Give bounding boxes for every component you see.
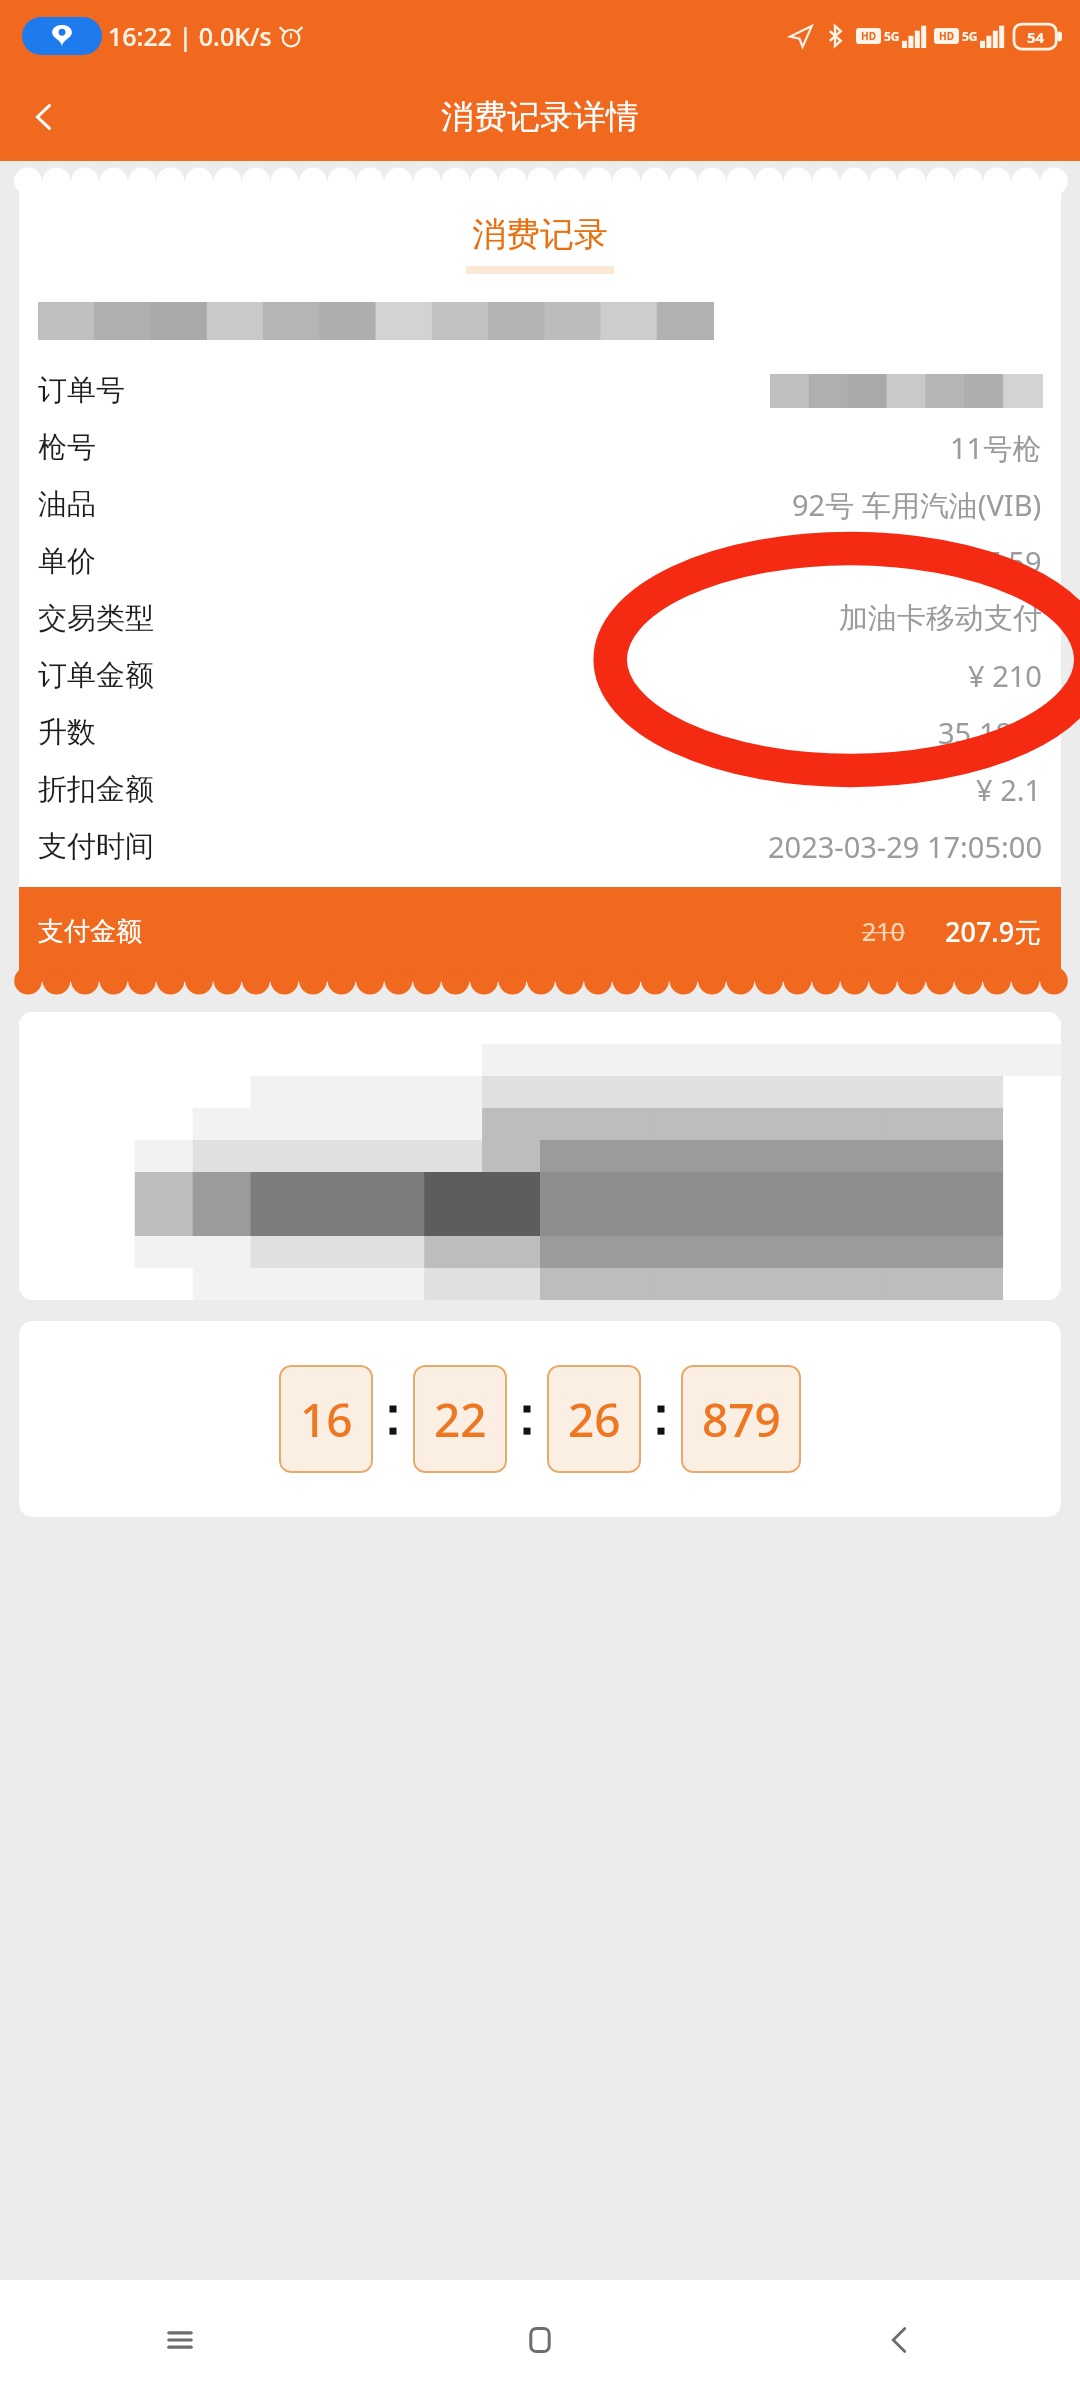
staticText: 22: [434, 1388, 487, 1451]
button[interactable]: 单价: [38, 533, 1042, 590]
button[interactable]: 订单金额: [38, 647, 1042, 704]
button[interactable]: 支付时间: [38, 818, 1042, 875]
staticText: 订单金额: [38, 657, 154, 694]
button[interactable]: 升数: [38, 704, 1042, 761]
staticText: 92号 车用汽油(VIB): [792, 485, 1042, 525]
button[interactable]: 枪号: [38, 419, 1042, 476]
staticText: 枪号: [38, 429, 96, 466]
staticText: ¥ 2.1: [976, 770, 1042, 809]
button[interactable]: 订单号: [38, 362, 1042, 419]
button[interactable]: 16: [279, 1365, 373, 1473]
staticText: 消费记录详情: [441, 96, 639, 138]
staticText: 16:22 | 0.0K/s: [108, 19, 272, 53]
staticText: ¥ 210: [968, 656, 1042, 695]
staticText: 11号枪: [950, 428, 1042, 468]
button[interactable]: Back: [16, 89, 72, 145]
staticText: 5G: [962, 28, 978, 44]
button[interactable]: Photo: [19, 1012, 1061, 1300]
staticText: 单价: [38, 543, 96, 580]
staticText: 油品: [38, 486, 96, 523]
button[interactable]: 折扣金额: [38, 761, 1042, 818]
staticText: 7.59: [984, 542, 1042, 581]
staticText: 54: [1027, 27, 1045, 47]
staticText: 支付时间: [38, 828, 154, 865]
staticText: 消费记录: [472, 213, 608, 256]
staticText: 207.9元: [945, 913, 1042, 950]
button[interactable]: 879: [681, 1365, 801, 1473]
staticText: 2023-03-29 17:05:00: [768, 827, 1042, 866]
staticText: 支付金额: [38, 915, 142, 948]
staticText: 210: [862, 914, 905, 948]
staticText: 35.18升: [938, 713, 1042, 753]
staticText: 折扣金额: [38, 771, 154, 808]
button[interactable]: Recents: [0, 2280, 360, 2400]
staticText: HD: [861, 29, 876, 43]
staticText: 26: [568, 1388, 621, 1451]
button[interactable]: Back: [720, 2280, 1080, 2400]
button[interactable]: Location: [22, 17, 102, 55]
button[interactable]: 26: [547, 1365, 641, 1473]
button[interactable]: 22: [413, 1365, 507, 1473]
button[interactable]: 油品: [38, 476, 1042, 533]
staticText: 升数: [38, 714, 96, 751]
staticText: 879: [702, 1388, 781, 1451]
staticText: 加油卡移动支付: [839, 600, 1042, 637]
staticText: HD: [939, 29, 954, 43]
staticText: 5G: [884, 28, 900, 44]
staticText: 16: [300, 1388, 353, 1451]
staticText: 交易类型: [38, 600, 154, 637]
button[interactable]: 交易类型: [38, 590, 1042, 647]
staticText: 订单号: [38, 372, 125, 409]
button[interactable]: Home: [360, 2280, 720, 2400]
